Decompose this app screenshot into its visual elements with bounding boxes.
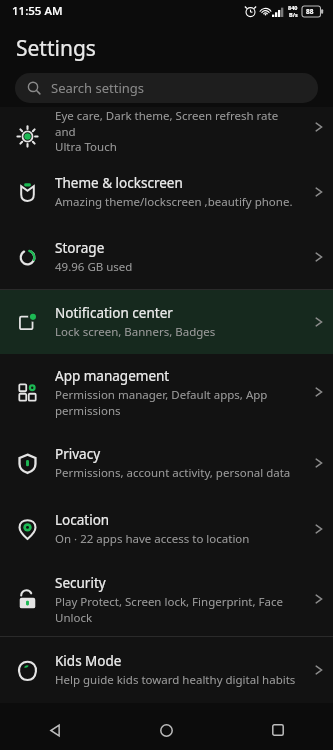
staticText: 840 — [288, 4, 298, 11]
button[interactable]: Location — [0, 496, 333, 562]
button[interactable]: Search settings — [15, 73, 318, 103]
staticText: Ultra Touch — [55, 139, 117, 155]
staticText: Theme & lockscreen — [55, 174, 183, 192]
staticText: Permission manager, Default apps, App pe… — [55, 387, 268, 418]
staticText: Permissions, account activity, personal … — [55, 465, 291, 481]
staticText: Location — [55, 511, 110, 529]
button[interactable]: Home — [111, 710, 222, 750]
button[interactable]: Recents — [222, 710, 333, 750]
button[interactable]: Kids Mode — [0, 637, 333, 703]
staticText: Kids Mode — [55, 652, 122, 670]
staticText: Privacy — [55, 445, 101, 463]
staticText: 88 — [306, 7, 314, 16]
staticText: Search settings — [51, 79, 145, 97]
staticText: 49.96 GB used — [55, 259, 133, 275]
button[interactable]: Back — [0, 710, 111, 750]
button[interactable]: Theme & lockscreen — [0, 159, 333, 225]
staticText: Lock screen, Banners, Badges — [55, 324, 216, 340]
staticText: B/s — [289, 11, 298, 18]
staticText: Eye care, Dark theme, Screen refresh rat… — [55, 108, 297, 139]
button[interactable]: Storage — [0, 225, 333, 289]
button[interactable]: Privacy — [0, 430, 333, 496]
staticText: Storage — [55, 239, 105, 257]
button[interactable]: Eye care, Dark theme, Screen refresh rat… — [0, 107, 333, 159]
button[interactable]: App management — [0, 354, 333, 430]
staticText: Help guide kids toward healthy digital h… — [55, 672, 296, 688]
staticText: Settings — [16, 34, 96, 63]
staticText: Amazing theme/lockscreen ,beautify phone… — [55, 194, 293, 210]
staticText: Security — [55, 574, 106, 592]
staticText: On · 22 apps have access to location — [55, 531, 250, 547]
staticText: App management — [55, 367, 170, 385]
button[interactable]: Security — [0, 562, 333, 636]
button[interactable]: Notification center — [0, 290, 333, 354]
staticText: Play Protect, Screen lock, Fingerprint, … — [55, 594, 284, 625]
staticText: 11:55 AM — [12, 3, 63, 19]
staticText: Notification center — [55, 304, 173, 322]
